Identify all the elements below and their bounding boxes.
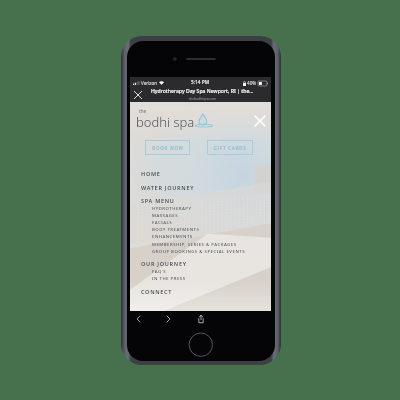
staticText: thebodhispa.com	[189, 96, 217, 100]
button[interactable]: Forward	[162, 311, 175, 327]
staticText: OUR JOURNEY	[141, 260, 187, 267]
button[interactable]: Share	[194, 311, 207, 327]
button[interactable]: WATER JOURNEY	[130, 181, 271, 194]
staticText: FACIALS	[152, 219, 173, 225]
staticText: BOOK NOW	[152, 145, 184, 151]
button[interactable]: Close browser	[132, 89, 144, 101]
staticText: MEMBERSHIP, SERIES & PACKAGES	[152, 241, 237, 247]
staticText: ENHANCEMENTS	[152, 233, 193, 239]
staticText: HOME	[141, 170, 161, 177]
button[interactable]: ENHANCEMENTS	[130, 232, 271, 239]
staticText: GROUP BOOKINGS & SPECIAL EVENTS	[152, 248, 246, 254]
button[interactable]: GIFT CARDS	[207, 140, 253, 155]
button[interactable]: MEMBERSHIP, SERIES & PACKAGES	[130, 240, 271, 247]
staticText: FAQ'S	[152, 268, 167, 274]
staticText: IN THE PRESS	[152, 275, 186, 281]
button[interactable]: GROUP BOOKINGS & SPECIAL EVENTS	[130, 247, 271, 254]
staticText: SPA MENU	[141, 197, 175, 204]
staticText: 5:14 PM	[191, 79, 210, 86]
button[interactable]: FAQ'S	[130, 267, 271, 274]
button[interactable]: CONNECT	[130, 285, 271, 298]
staticText: GIFT CARDS	[213, 145, 247, 151]
button[interactable]: HOME	[130, 167, 271, 180]
staticText: WATER JOURNEY	[141, 184, 195, 191]
button[interactable]: HYDROTHERAPY	[130, 204, 271, 211]
staticText: CONNECT	[141, 288, 173, 295]
staticText: HYDROTHERAPY	[152, 205, 192, 211]
staticText: bodhi spa	[136, 113, 195, 131]
button[interactable]: FACIALS	[130, 218, 271, 225]
button[interactable]: OUR JOURNEY	[130, 257, 271, 270]
staticText: Hydrotherapy Day Spa Newport, RI | the…	[151, 88, 254, 95]
staticText: MASSAGES	[152, 212, 179, 218]
button[interactable]: IN THE PRESS	[130, 274, 271, 281]
staticText: 40%	[247, 80, 257, 86]
button[interactable]: BOOK NOW	[145, 140, 190, 155]
button[interactable]: SPA MENU	[130, 194, 271, 207]
staticText: Verizon	[141, 80, 158, 86]
staticText: BODY TREATMENTS	[152, 226, 200, 232]
staticText: the	[139, 108, 147, 114]
button[interactable]: MASSAGES	[130, 211, 271, 218]
button[interactable]: BODY TREATMENTS	[130, 225, 271, 232]
button[interactable]: Back	[132, 311, 145, 327]
button[interactable]: Close menu	[253, 114, 267, 128]
